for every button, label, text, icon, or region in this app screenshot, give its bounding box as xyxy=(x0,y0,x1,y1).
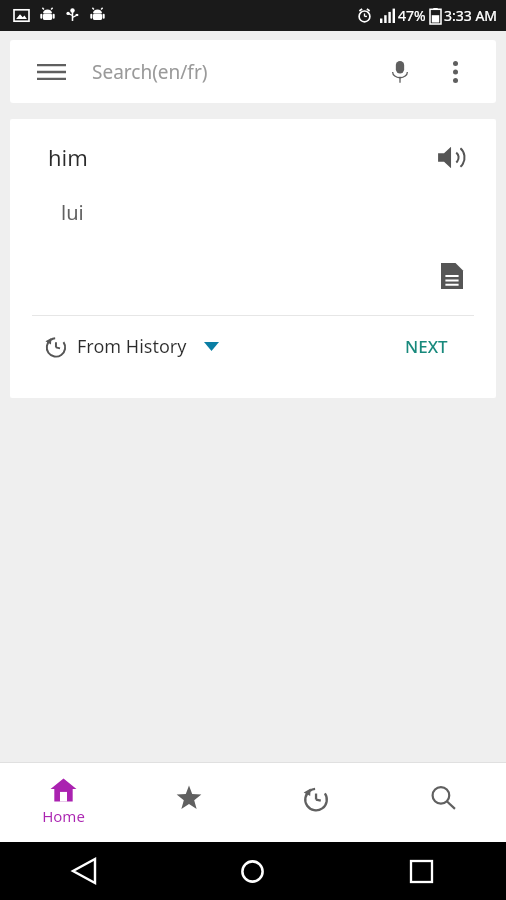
button[interactable]: History xyxy=(252,762,379,842)
staticText: 47% xyxy=(398,6,426,25)
button[interactable]: Search xyxy=(379,762,506,842)
button[interactable]: More options xyxy=(438,55,472,89)
staticText: From History xyxy=(77,334,187,359)
button[interactable]: Menu xyxy=(34,55,68,89)
staticText: 3:33 AM xyxy=(444,6,498,25)
button[interactable]: Favourites xyxy=(126,762,252,842)
staticText: NEXT xyxy=(405,335,448,358)
staticText: Search(en/fr) xyxy=(92,59,208,85)
staticText: Home xyxy=(42,806,85,826)
button[interactable]: Voice search xyxy=(379,51,421,93)
button[interactable]: Recent apps xyxy=(337,842,506,900)
staticText: him xyxy=(48,142,88,172)
button[interactable]: Definition xyxy=(430,254,474,298)
button[interactable]: Back xyxy=(0,842,168,900)
button[interactable]: NEXT xyxy=(405,335,448,358)
button[interactable]: Pronounce xyxy=(428,135,472,179)
button[interactable]: From History xyxy=(44,334,219,359)
button[interactable]: Home xyxy=(168,842,337,900)
button[interactable]: Home xyxy=(0,762,126,842)
button[interactable]: Menu xyxy=(10,40,496,103)
staticText: lui xyxy=(61,199,84,226)
